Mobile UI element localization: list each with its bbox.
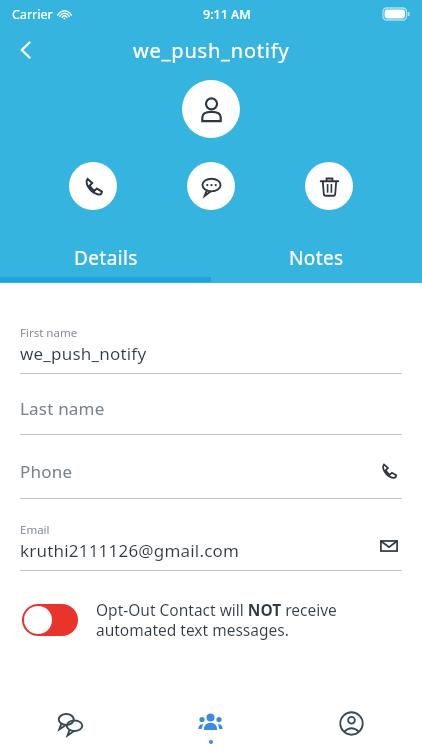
staticText: Last name — [20, 397, 402, 420]
staticText: Details — [74, 245, 138, 271]
button[interactable]: Message — [187, 162, 235, 210]
staticText: kruthi2111126@gmail.com — [20, 539, 240, 562]
staticText: Carrier — [12, 6, 53, 23]
button[interactable]: Notes — [211, 238, 422, 277]
staticText: First name — [20, 325, 78, 341]
button[interactable]: Email — [20, 522, 402, 571]
other: Opt-out of automated text messages — [22, 604, 78, 636]
button[interactable]: Opt-out of automated text messages — [22, 599, 400, 641]
button[interactable]: Last name — [20, 397, 402, 435]
staticText: Phone — [20, 460, 376, 483]
button[interactable]: Back — [4, 28, 48, 72]
button[interactable]: Call contact — [376, 458, 402, 484]
button[interactable]: First name — [20, 325, 402, 374]
staticText: we_push_notify — [133, 37, 290, 64]
button[interactable]: Account — [281, 704, 422, 750]
staticText: Notes — [289, 245, 344, 271]
staticText: we_push_notify — [20, 342, 147, 365]
button[interactable]: Messages — [0, 704, 140, 750]
button[interactable]: Call — [69, 162, 117, 210]
button[interactable]: Contacts — [140, 704, 281, 750]
button[interactable]: Details — [0, 238, 211, 277]
button[interactable]: Email contact — [376, 533, 402, 559]
button[interactable]: Phone — [20, 458, 402, 499]
staticText: 9:11 AM — [203, 6, 251, 23]
button[interactable]: Contact avatar — [182, 80, 240, 138]
button[interactable]: Delete — [305, 162, 353, 210]
staticText: Opt-Out Contact will NOT receive automat… — [96, 599, 400, 641]
staticText: Email — [20, 522, 50, 538]
